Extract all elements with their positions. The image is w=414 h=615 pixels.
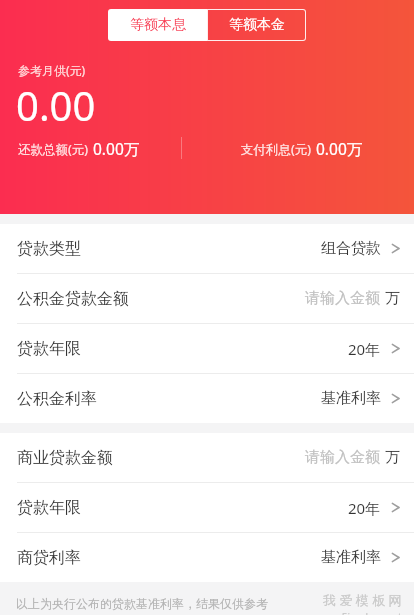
staticText: 0.00万: [316, 138, 363, 159]
other: 选择: [391, 241, 400, 256]
staticText: 20年: [348, 498, 381, 518]
staticText: 0.00: [16, 78, 96, 132]
staticText: 基准利率: [321, 389, 381, 408]
staticText: 商贷利率: [17, 548, 81, 568]
button[interactable]: 等额本息: [108, 9, 207, 41]
staticText: 0.00万: [93, 138, 140, 159]
staticText: 商业贷款金额: [17, 448, 113, 468]
staticText: 以上为央行公布的贷款基准利率，结果仅供参考: [16, 596, 316, 611]
button[interactable]: 商贷利率: [0, 533, 414, 582]
staticText: 组合贷款: [321, 239, 381, 258]
other: 选择: [391, 500, 400, 515]
staticText: 请输入金额: [305, 289, 380, 308]
staticText: 请输入金额: [305, 448, 380, 467]
button[interactable]: 贷款年限: [0, 324, 414, 373]
staticText: 万: [385, 289, 400, 308]
staticText: 等额本金: [229, 16, 285, 34]
button[interactable]: 商业贷款金额: [0, 433, 414, 482]
staticText: 支付利息(元): [241, 141, 312, 158]
staticText: www.5imoban.net: [316, 610, 402, 615]
staticText: 公积金贷款金额: [17, 289, 129, 309]
button[interactable]: 等额本金: [207, 9, 306, 41]
other: 选择: [391, 391, 400, 406]
staticText: 公积金利率: [17, 389, 97, 409]
staticText: 我 爱 模 板 网: [323, 591, 402, 609]
staticText: 还款总额(元): [18, 141, 89, 158]
button[interactable]: 贷款类型: [0, 224, 414, 273]
staticText: 贷款类型: [17, 239, 81, 259]
staticText: 参考月供(元): [18, 62, 86, 78]
button[interactable]: 公积金贷款金额: [0, 274, 414, 323]
button[interactable]: 公积金利率: [0, 374, 414, 423]
staticText: 贷款年限: [17, 498, 81, 518]
other: 选择: [391, 550, 400, 565]
staticText: 等额本息: [130, 16, 186, 34]
other: 选择: [391, 341, 400, 356]
staticText: 万: [385, 448, 400, 467]
staticText: 20年: [348, 339, 381, 359]
button[interactable]: 贷款年限: [0, 483, 414, 532]
staticText: 基准利率: [321, 548, 381, 567]
staticText: 贷款年限: [17, 339, 81, 359]
